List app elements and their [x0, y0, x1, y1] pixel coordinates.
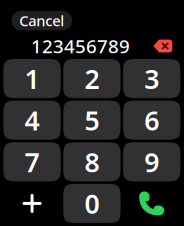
button[interactable]: 2 — [63, 59, 120, 98]
staticText: 1 — [25, 61, 40, 96]
staticText: 6 — [144, 102, 159, 138]
staticText: 123456789 — [31, 34, 130, 58]
staticText: 8 — [84, 144, 99, 179]
staticText: 5 — [84, 102, 99, 138]
button[interactable]: 4 — [3, 101, 61, 140]
button[interactable]: Call — [123, 184, 180, 223]
button[interactable]: 7 — [3, 142, 61, 181]
staticText: 4 — [25, 102, 40, 138]
staticText: 7 — [25, 144, 40, 179]
button[interactable]: 6 — [123, 101, 180, 140]
button[interactable]: Plus — [3, 184, 61, 223]
staticText: 0 — [84, 186, 99, 221]
button[interactable]: 0 — [63, 184, 120, 223]
staticText: 3 — [144, 61, 159, 96]
staticText: 9 — [144, 144, 159, 179]
button[interactable]: 1 — [3, 59, 61, 98]
staticText: 2 — [84, 61, 99, 96]
button[interactable]: 5 — [63, 101, 120, 140]
button[interactable]: 8 — [63, 142, 120, 181]
button[interactable]: Cancel — [11, 11, 72, 30]
button[interactable]: Delete — [147, 34, 177, 58]
staticText: Cancel — [19, 11, 64, 30]
button[interactable]: 9 — [123, 142, 180, 181]
button[interactable]: 3 — [123, 59, 180, 98]
